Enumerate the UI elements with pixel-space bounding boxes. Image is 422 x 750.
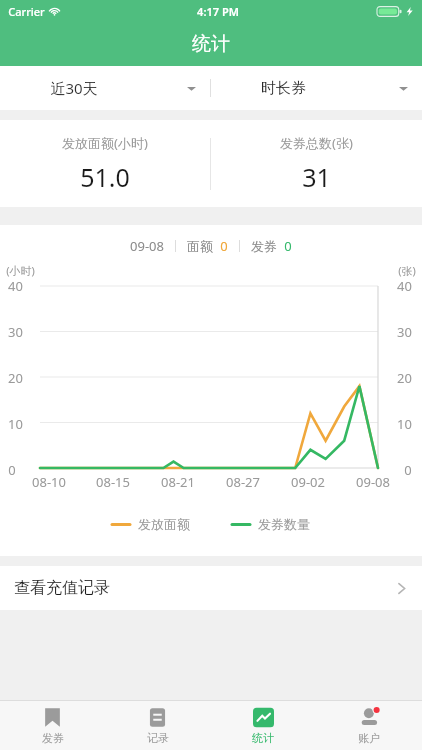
staticText: Carrier	[8, 4, 45, 19]
staticText: 0	[220, 237, 228, 255]
button[interactable]: 统计	[210, 701, 316, 750]
staticText: 面额	[187, 238, 213, 254]
staticText: 0	[284, 237, 292, 255]
staticText: 08-10	[32, 473, 66, 491]
staticText: 08-15	[96, 473, 130, 491]
staticText: 08-27	[226, 473, 260, 491]
staticText: 发放面额(小时)	[62, 134, 148, 152]
button[interactable]: 账户	[316, 701, 422, 750]
staticText: 发券	[251, 238, 277, 254]
staticText: 30	[8, 323, 23, 341]
staticText: 20	[397, 369, 412, 387]
staticText: (张)	[398, 263, 416, 278]
staticText: 统计	[192, 32, 230, 56]
staticText: 40	[397, 277, 412, 295]
staticText: 10	[8, 415, 23, 433]
staticText: 查看充值记录	[14, 578, 110, 598]
staticText: 09-08	[130, 237, 164, 255]
button[interactable]: 时长券	[211, 66, 422, 110]
staticText: 发券数量	[258, 516, 310, 532]
staticText: 09-08	[356, 473, 390, 491]
button[interactable]: 查看充值记录	[0, 566, 422, 610]
staticText: 51.0	[80, 160, 130, 194]
staticText: (小时)	[6, 263, 35, 278]
staticText: 31	[302, 160, 331, 194]
staticText: 时长券	[261, 79, 306, 98]
staticText: 30	[397, 323, 412, 341]
staticText: 0	[404, 461, 412, 479]
staticText: 近30天	[50, 78, 98, 98]
button[interactable]: 发券	[0, 701, 105, 750]
button[interactable]: 记录	[105, 701, 210, 750]
staticText: 账户	[358, 731, 380, 745]
staticText: 发券总数(张)	[280, 134, 353, 152]
staticText: 0	[8, 461, 16, 479]
staticText: 发放面额	[138, 516, 190, 532]
staticText: 发券	[42, 731, 64, 745]
button[interactable]: 近30天	[0, 66, 210, 110]
staticText: 4:17 PM	[197, 4, 239, 19]
staticText: 统计	[252, 731, 274, 745]
staticText: 40	[8, 277, 23, 295]
staticText: 09-02	[291, 473, 325, 491]
staticText: 08-21	[161, 473, 195, 491]
staticText: 10	[397, 415, 412, 433]
staticText: 记录	[147, 731, 169, 745]
staticText: 20	[8, 369, 23, 387]
